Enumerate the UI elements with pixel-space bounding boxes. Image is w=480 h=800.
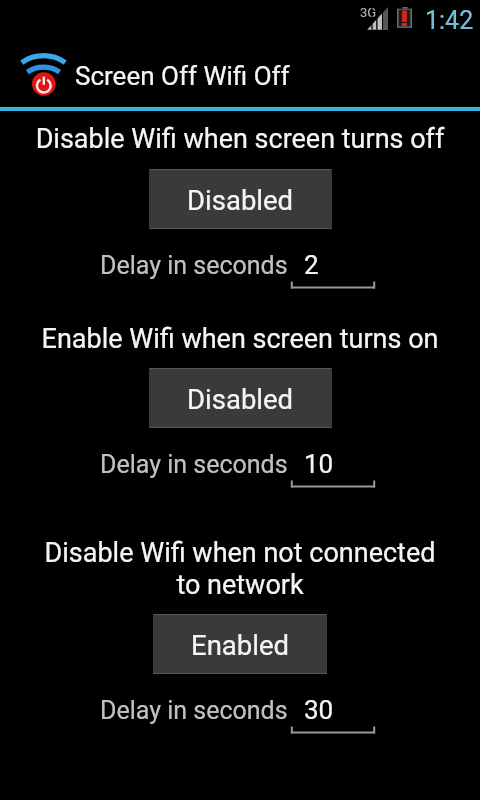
staticText: Enable Wifi when screen turns on [0,323,480,355]
staticText: Disabled [187,383,294,415]
button[interactable]: Disabled [149,169,332,229]
staticText: Delay in seconds [100,450,288,479]
button[interactable]: Disabled [149,368,332,428]
button[interactable]: 2 [291,249,375,289]
button[interactable]: Screen Off Wifi Off [0,34,480,107]
staticText: 30 [304,695,334,725]
staticText: Delay in seconds [100,251,288,280]
staticText: Disabled [187,184,294,216]
staticText: 1:42 [425,6,474,35]
staticText: 10 [304,449,334,479]
other: Battery low [397,7,412,28]
staticText: Screen Off Wifi Off [75,61,290,91]
staticText: Enabled [191,629,289,661]
staticText: 2 [304,250,319,280]
staticText: Disable Wifi when not connected to netwo… [40,537,440,601]
button[interactable]: 30 [291,694,375,734]
button[interactable]: Enabled [153,614,327,674]
staticText: Disable Wifi when screen turns off [0,123,480,155]
other: Signal strength [367,6,388,30]
staticText: 3G [360,5,377,20]
staticText: Delay in seconds [100,696,288,725]
button[interactable]: 10 [291,448,375,488]
